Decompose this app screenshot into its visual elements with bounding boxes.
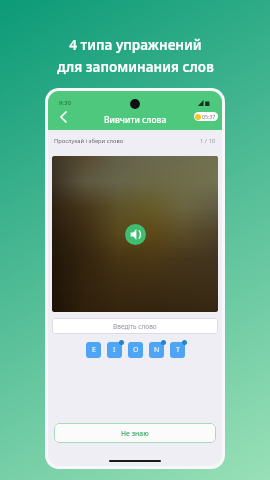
staticText: I: [113, 345, 116, 355]
button[interactable]: O: [128, 342, 143, 358]
staticText: 05:37: [202, 113, 216, 120]
button[interactable]: Back: [53, 108, 71, 126]
staticText: 9:30: [59, 99, 71, 107]
staticText: N: [154, 345, 160, 355]
button[interactable]: Введіть слово: [52, 318, 218, 334]
button[interactable]: N: [149, 342, 164, 358]
staticText: Вивчити слова: [104, 114, 167, 126]
button[interactable]: Не знаю: [54, 423, 216, 443]
staticText: 1 / 10: [200, 137, 216, 145]
button[interactable]: Play sound: [125, 224, 146, 245]
staticText: Не знаю: [121, 429, 149, 438]
button[interactable]: T: [170, 342, 185, 358]
staticText: O: [133, 345, 139, 355]
staticText: E: [92, 345, 96, 355]
staticText: Введіть слово: [113, 322, 157, 331]
button[interactable]: E: [86, 342, 101, 358]
staticText: Прослухай і збери слово: [54, 137, 124, 145]
staticText: T: [176, 345, 180, 355]
staticText: 4 типа упражнений: [69, 36, 202, 54]
staticText: для запоминания слов: [57, 58, 214, 76]
button[interactable]: 05:37: [194, 112, 218, 121]
button[interactable]: I: [107, 342, 122, 358]
